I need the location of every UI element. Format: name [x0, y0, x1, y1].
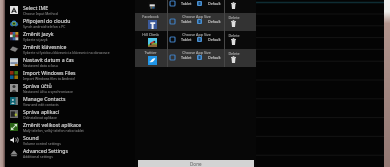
staticText: Default	[208, 37, 221, 42]
staticText: Tablet	[181, 1, 192, 6]
staticText: Změnit velikost aplikace	[23, 121, 82, 128]
button[interactable]: Změnit jazyk	[0, 29, 390, 42]
button[interactable]: Delete	[224, 31, 256, 49]
button[interactable]: Tablet	[170, 37, 192, 42]
staticText: Tablet	[181, 37, 192, 42]
staticText: Změnit jazyk	[23, 30, 54, 37]
staticText: Choose App Size	[182, 32, 211, 37]
button[interactable]	[135, 0, 167, 13]
staticText: Volume control settings	[23, 141, 61, 146]
button[interactable]: Správa účtů	[0, 81, 390, 94]
button[interactable]: Done	[138, 160, 254, 167]
staticText: Vyberte si fyzickou klávesnici a klávesn…	[23, 50, 110, 55]
button[interactable]: Default	[197, 55, 221, 60]
button[interactable]: Import Windows Files	[0, 68, 390, 81]
staticText: Done	[190, 161, 202, 167]
staticText: Správa účtů	[23, 82, 52, 89]
staticText: Additional settings	[23, 154, 53, 159]
button[interactable]: Změnit velikost aplikace	[0, 120, 390, 133]
button[interactable]: Delete	[224, 49, 256, 67]
button[interactable]: Delete	[224, 0, 256, 13]
button[interactable]: Správa aplikací	[0, 107, 390, 120]
staticText: View and edit contacts	[23, 102, 59, 107]
staticText: Facebook	[142, 14, 159, 19]
staticText: Choose Input Method	[23, 11, 58, 16]
staticText: Default	[208, 55, 221, 60]
staticText: Import Windows Files	[23, 69, 76, 76]
staticText: Import Windows files to Android	[23, 76, 75, 81]
staticText: Odinstalovat aplikace	[23, 115, 58, 120]
staticText: Sound	[23, 134, 39, 141]
button[interactable]: Sound	[0, 133, 390, 146]
staticText: Choose App Size	[182, 14, 211, 19]
button[interactable]: Tablet	[170, 55, 192, 60]
staticText: Změnit klávesnice	[23, 43, 67, 50]
staticText: Tablet	[181, 55, 192, 60]
staticText: Vyberte si jazyk	[23, 37, 48, 42]
staticText: Delete	[228, 33, 240, 38]
button[interactable]: Tablet	[170, 19, 192, 24]
button[interactable]: Facebook	[135, 13, 167, 31]
staticText: Select IME	[23, 4, 49, 11]
staticText: Správa aplikací	[23, 108, 60, 115]
staticText: Advanced Settings	[23, 147, 68, 154]
staticText: Default	[208, 19, 221, 24]
staticText: Twitter	[144, 50, 157, 55]
button[interactable]: Nastavit datum a čas	[0, 55, 390, 68]
button[interactable]: Připojení do cloudu	[0, 16, 390, 29]
staticText: Delete	[228, 15, 240, 20]
staticText: Hill Climb	[142, 32, 159, 37]
button[interactable]: Delete	[224, 13, 256, 31]
button[interactable]: Tablet	[170, 1, 192, 6]
button[interactable]: Select IME	[0, 3, 390, 16]
staticText: Default	[208, 1, 221, 6]
staticText: Choose App Size	[182, 50, 211, 55]
staticText: Malý telefon, velký telefon nebo tablet	[23, 128, 84, 133]
staticText: Nastavení data a času	[23, 63, 58, 68]
staticText: Manage Contacts	[23, 95, 66, 102]
button[interactable]: Manage Contacts	[0, 94, 390, 107]
staticText: Nastavení účtu a synchronizace	[23, 89, 73, 94]
button[interactable]: Twitter	[135, 49, 167, 67]
button[interactable]: Hill Climb	[135, 31, 167, 49]
button[interactable]: Default	[197, 1, 221, 6]
staticText: Delete	[228, 51, 240, 56]
staticText: Připojení do cloudu	[23, 17, 71, 24]
button[interactable]: Změnit klávesnice	[0, 42, 390, 55]
staticText: Nastavit datum a čas	[23, 56, 74, 63]
button[interactable]: Default	[197, 19, 221, 24]
button[interactable]: Default	[197, 37, 221, 42]
staticText: Tablet	[181, 19, 192, 24]
button[interactable]: Advanced Settings	[0, 146, 390, 159]
staticText: Synch android telefon s PC	[23, 24, 66, 29]
